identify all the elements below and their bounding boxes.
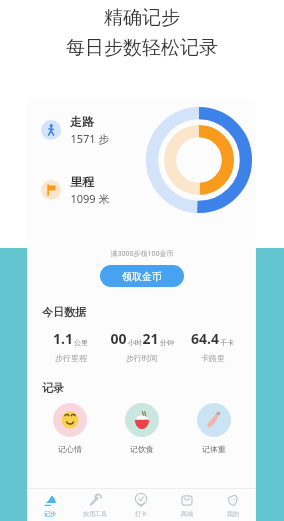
staticText: 00 xyxy=(110,329,127,348)
staticText: 精确记步 xyxy=(104,6,180,30)
button[interactable]: 实用工具 xyxy=(72,489,118,521)
staticText: 记饮食 xyxy=(130,444,154,454)
staticText: 商城 xyxy=(181,510,193,518)
staticText: 里程 xyxy=(70,174,94,189)
staticText: 记体重 xyxy=(202,444,226,454)
button[interactable]: 商城 xyxy=(164,489,210,521)
staticText: 分钟 xyxy=(160,338,174,347)
staticText: 记心情 xyxy=(58,444,82,454)
staticText: 步行里程 xyxy=(55,353,87,363)
staticText: 记步 xyxy=(44,510,56,518)
button[interactable]: 记体重 xyxy=(178,403,250,454)
staticText: 小时 xyxy=(128,338,142,347)
button[interactable]: 记饮食 xyxy=(106,403,178,454)
staticText: 21 xyxy=(142,329,159,348)
staticText: 领取金币 xyxy=(122,270,162,283)
button[interactable]: 记步 xyxy=(27,489,72,521)
button[interactable]: 我的 xyxy=(210,489,256,521)
staticText: 步行时间 xyxy=(126,353,158,363)
staticText: 打卡 xyxy=(135,510,147,518)
staticText: 实用工具 xyxy=(83,510,107,518)
staticText: 1.1 xyxy=(53,329,73,348)
staticText: 我的 xyxy=(227,510,239,518)
staticText: 千卡 xyxy=(220,338,234,347)
button[interactable]: 打卡 xyxy=(118,489,164,521)
staticText: 公里 xyxy=(74,338,88,347)
staticText: 满3000步领100金币 xyxy=(110,249,174,259)
staticText: 1099 米 xyxy=(70,191,110,206)
staticText: 记录 xyxy=(42,381,64,395)
button[interactable]: 记心情 xyxy=(33,403,106,454)
staticText: 今日数据 xyxy=(42,305,86,319)
staticText: 64.4 xyxy=(191,329,219,348)
staticText: 走路 xyxy=(70,114,94,129)
button[interactable]: 领取金币 xyxy=(100,265,184,287)
staticText: 1571 步 xyxy=(70,131,110,146)
staticText: 每日步数轻松记录 xyxy=(66,36,218,60)
staticText: 卡路里 xyxy=(201,353,225,363)
